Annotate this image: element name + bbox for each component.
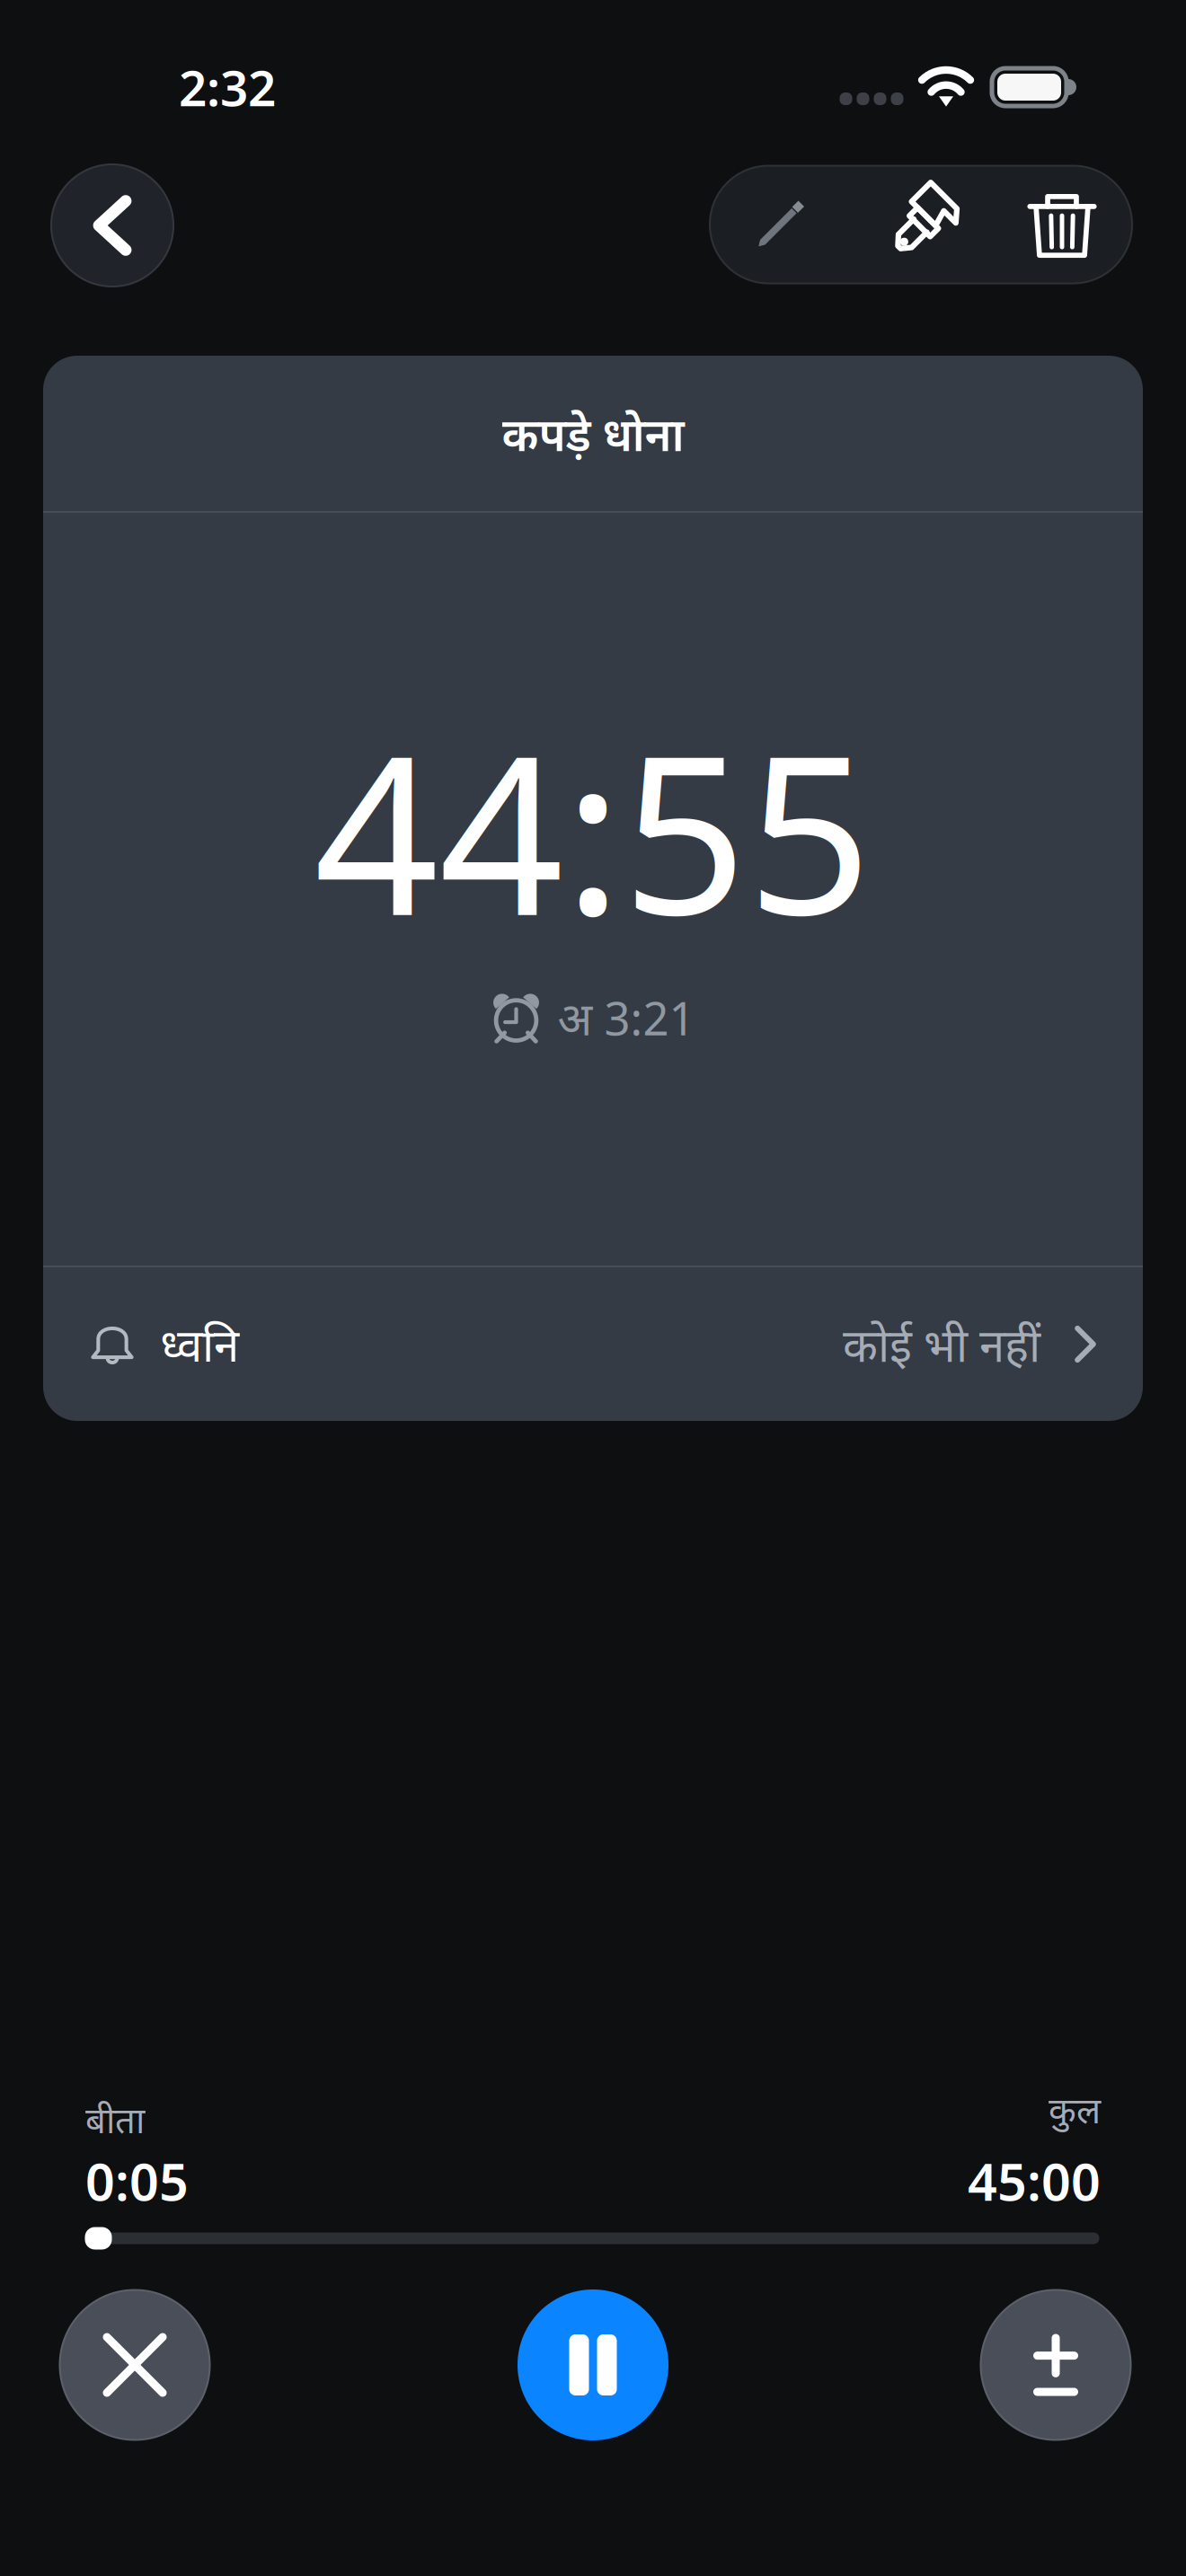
button[interactable]: Pause timer [518, 2289, 668, 2440]
staticText: 45:00 [968, 2147, 1101, 2215]
button[interactable]: Cancel timer [60, 2290, 210, 2440]
staticText: कपड़े धोना [502, 403, 684, 464]
staticText: कोई भी नहीं [843, 1314, 1040, 1374]
staticText: कुल [1049, 2086, 1101, 2133]
staticText: 0:05 [85, 2147, 189, 2215]
staticText: 44:55 [314, 685, 872, 975]
button[interactable]: Edit [710, 166, 851, 283]
button[interactable]: Back [51, 164, 173, 287]
button[interactable]: Adjust timer [981, 2290, 1131, 2440]
button[interactable]: Appearance [851, 166, 992, 283]
button[interactable]: Delete [992, 166, 1132, 283]
staticText: अ 3:21 [558, 987, 695, 1048]
staticText: ध्वनि [160, 1314, 239, 1374]
button[interactable]: ध्वनि [43, 1267, 1143, 1421]
staticText: बीता [85, 2095, 145, 2143]
staticText: 2:32 [179, 55, 276, 120]
